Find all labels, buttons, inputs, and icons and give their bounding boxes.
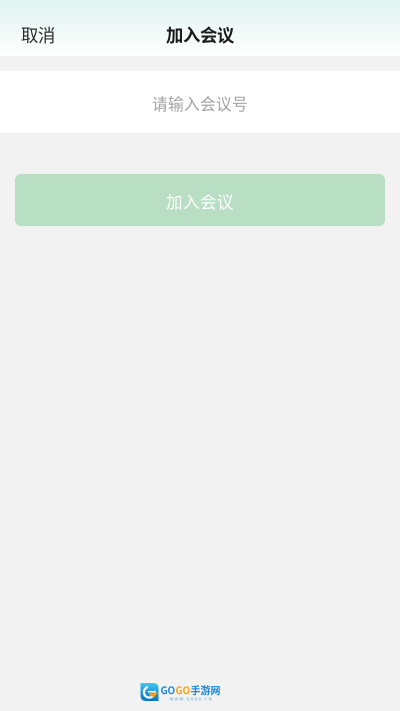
staticText: 手游网 <box>190 683 220 697</box>
button[interactable]: 请输入会议号 <box>0 71 400 133</box>
button[interactable]: 取消 <box>0 0 97 53</box>
staticText: 取消 <box>21 21 55 47</box>
staticText: 加入会议 <box>166 21 234 47</box>
staticText: GO <box>175 683 190 697</box>
staticText: 加入会议 <box>166 189 234 213</box>
staticText: GO <box>160 683 175 697</box>
staticText: 请输入会议号 <box>152 92 248 114</box>
staticText: W W W . G O G O . C N <box>169 696 211 702</box>
button[interactable]: 加入会议 <box>15 174 385 226</box>
